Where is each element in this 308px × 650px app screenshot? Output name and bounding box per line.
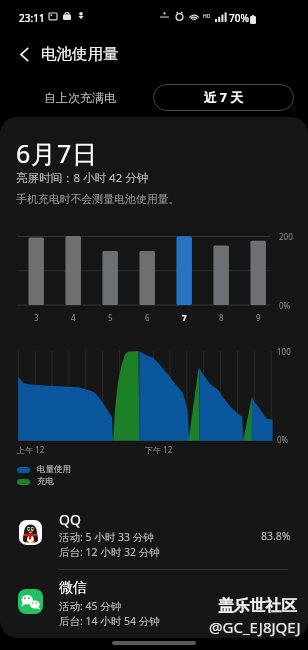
staticText: 微信 (59, 579, 87, 597)
staticText: 83.8% (261, 529, 291, 543)
staticText: 活动: 5 小时 33 分钟 (59, 530, 154, 544)
staticText: 3 (34, 312, 39, 323)
staticText: 电量使用 (37, 464, 71, 475)
staticText: QQ (59, 510, 81, 529)
staticText: 0% (277, 434, 289, 445)
staticText: 4 (71, 312, 76, 323)
staticText: 5 (108, 312, 113, 323)
staticText: 后台: 14 小时 54 分钟 (59, 614, 160, 628)
staticText: 0% (279, 300, 291, 311)
staticText: 70% (229, 11, 249, 25)
staticText: @GC_EJ8JQEJ (209, 617, 301, 637)
button[interactable]: Back (8, 38, 40, 70)
staticText: 盖乐世社区 (218, 596, 297, 616)
staticText: 6 (145, 312, 150, 323)
button[interactable]: QQ (0, 510, 308, 578)
staticText: 近 7 天 (204, 89, 243, 106)
staticText: 100 (277, 346, 291, 357)
staticText: 上午 12 (17, 444, 45, 455)
staticText: 充电 (37, 476, 54, 487)
staticText: 23:11 (19, 11, 45, 25)
staticText: 亮屏时间：8 小时 42 分钟 (16, 170, 149, 186)
staticText: 活动: 45 分钟 (59, 599, 122, 613)
staticText: 自上次充满电 (44, 90, 116, 105)
staticText: 9 (256, 312, 261, 323)
button[interactable]: 近 7 天 (153, 84, 294, 111)
staticText: 8 (219, 312, 224, 323)
staticText: 手机充电时不会测量电池使用量。 (16, 193, 180, 207)
button[interactable]: 微信 (0, 579, 308, 647)
staticText: HD (203, 13, 211, 20)
staticText: 7 (182, 312, 187, 323)
staticText: 200 (279, 231, 293, 242)
staticText: 下午 12 (145, 444, 173, 455)
staticText: 后台: 12 小时 32 分钟 (59, 545, 160, 559)
staticText: 电池使用量 (41, 44, 119, 64)
staticText: 6月7日 (16, 136, 98, 170)
button[interactable]: 自上次充满电 (16, 84, 144, 111)
